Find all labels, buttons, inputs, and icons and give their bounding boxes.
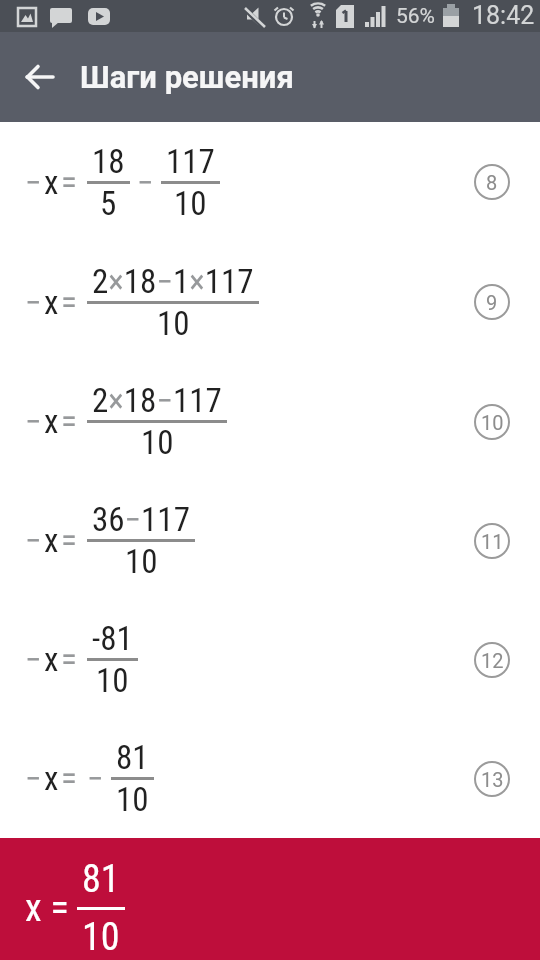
button[interactable]: −x= xyxy=(0,719,540,838)
staticText: 56% xyxy=(396,4,435,29)
staticText: 13 xyxy=(481,768,504,791)
staticText: Шаги решения xyxy=(80,59,294,95)
staticText: 18:42 xyxy=(472,1,535,30)
staticText: 36−117 xyxy=(92,500,190,539)
staticText: − xyxy=(137,163,154,202)
button[interactable]: −x= xyxy=(0,481,540,600)
staticText: 10 xyxy=(157,304,190,343)
staticText: 81 xyxy=(116,738,149,777)
staticText: -81 xyxy=(92,619,133,658)
staticText: −x= xyxy=(25,283,80,322)
staticText: −x= xyxy=(25,640,80,679)
staticText: 2×18−1×117 xyxy=(92,262,254,301)
button[interactable]: −x= xyxy=(0,122,540,242)
staticText: 81 xyxy=(82,857,120,902)
button[interactable]: −x= xyxy=(0,362,540,481)
staticText: 10 xyxy=(116,780,149,819)
staticText: −x= xyxy=(25,521,80,560)
staticText: 9 xyxy=(486,291,498,314)
staticText: −x= xyxy=(25,402,80,441)
staticText: 117 xyxy=(166,142,215,181)
staticText: x = xyxy=(25,886,69,931)
staticText: 10 xyxy=(481,411,504,434)
staticText: 11 xyxy=(481,530,504,553)
staticText: 18 xyxy=(92,142,125,181)
staticText: 10 xyxy=(82,915,120,960)
staticText: 5 xyxy=(100,184,117,223)
staticText: 10 xyxy=(96,661,129,700)
staticText: 8 xyxy=(486,171,498,194)
button[interactable]: −x= xyxy=(0,600,540,719)
staticText: 2×18−117 xyxy=(92,381,222,420)
button[interactable]: x = xyxy=(0,838,540,960)
staticText: 10 xyxy=(174,184,207,223)
staticText: − xyxy=(87,759,104,798)
staticText: −x= xyxy=(25,163,80,202)
staticText: −x= xyxy=(25,759,80,798)
staticText: 12 xyxy=(481,649,504,672)
button[interactable] xyxy=(24,61,56,93)
staticText: 10 xyxy=(141,423,174,462)
button[interactable]: −x= xyxy=(0,242,540,362)
staticText: 10 xyxy=(125,542,158,581)
